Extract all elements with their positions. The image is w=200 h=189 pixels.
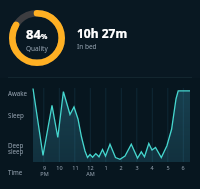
staticText: Awake [8,89,28,97]
staticText: 10 [56,164,63,171]
staticText: 10h 27m [77,25,128,41]
staticText: 3 [135,164,139,171]
staticText: 11 [72,164,79,171]
staticText: 2 [119,164,123,171]
staticText: % [41,32,48,42]
staticText: 9 PM [40,164,49,178]
staticText: Time [8,168,23,176]
staticText: 4 [150,164,154,171]
staticText: Quality [26,44,48,53]
staticText: In bed [77,42,97,51]
button[interactable]: 84 [0,0,200,77]
staticText: Sleep [8,111,24,119]
staticText: 1 [104,164,108,171]
staticText: 6 [181,164,185,171]
staticText: Deep sleep [8,141,24,156]
staticText: 84 [26,25,41,43]
staticText: 5 [166,164,170,171]
staticText: 12 AM [86,164,95,178]
